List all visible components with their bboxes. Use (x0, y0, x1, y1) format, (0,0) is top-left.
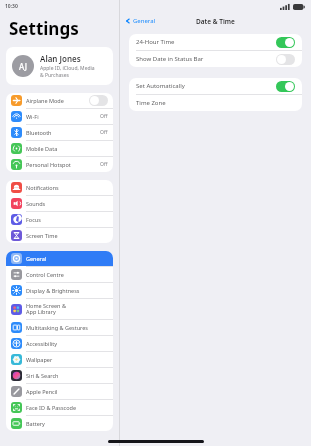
staticText: Bluetooth (26, 129, 100, 136)
staticText: Wallpaper (26, 356, 108, 363)
staticText: Apple ID, iCloud, Media & Purchases (40, 65, 95, 79)
staticText: AJ (19, 61, 27, 72)
staticText: 10:30 (5, 3, 18, 10)
button[interactable]: Show Date in Status Bar (129, 51, 302, 67)
staticText: Mobile Data (26, 145, 108, 152)
staticText: 24-Hour Time (136, 38, 276, 46)
staticText: Time Zone (136, 99, 295, 107)
staticText: Show Date in Status Bar (136, 55, 276, 63)
button[interactable]: Sounds (6, 196, 113, 211)
staticText: Off (100, 129, 108, 136)
staticText: Display & Brightness (26, 287, 108, 294)
staticText: Face ID & Passcode (26, 404, 108, 411)
staticText: Screen Time (26, 232, 108, 239)
button[interactable]: Personal Hotspot (6, 157, 113, 172)
staticText: Notifications (26, 184, 108, 191)
staticText: Wi-Fi (26, 113, 100, 120)
button[interactable]: Toggle on (276, 37, 295, 48)
button[interactable]: AJ (6, 47, 113, 85)
staticText: Accessibility (26, 340, 108, 347)
button[interactable]: Airplane Mode (6, 93, 113, 108)
button[interactable]: Toggle on (276, 81, 295, 92)
staticText: Siri & Search (26, 372, 108, 379)
button[interactable]: General (125, 17, 156, 25)
button[interactable]: General (6, 251, 113, 266)
staticText: Off (100, 113, 108, 120)
staticText: Sounds (26, 200, 108, 207)
staticText: General (26, 255, 108, 262)
staticText: Battery (26, 420, 108, 427)
button[interactable]: Home Screen & App Library (6, 299, 113, 319)
button[interactable]: Toggle off (276, 54, 295, 65)
staticText: Set Automatically (136, 82, 276, 90)
button[interactable]: Accessibility (6, 336, 113, 351)
staticText: Airplane Mode (26, 97, 89, 104)
button[interactable]: Multitasking & Gestures (6, 320, 113, 335)
staticText: Alan Jones (40, 53, 81, 64)
staticText: Off (100, 161, 108, 168)
staticText: Date & Time (196, 17, 235, 26)
button[interactable]: Wallpaper (6, 352, 113, 367)
button[interactable]: Screen Time (6, 228, 113, 243)
button[interactable]: Siri & Search (6, 368, 113, 383)
button[interactable]: 24-Hour Time (129, 34, 302, 50)
button[interactable]: Focus (6, 212, 113, 227)
button[interactable]: Wi-Fi (6, 109, 113, 124)
button[interactable]: Battery (6, 416, 113, 431)
staticText: Home Screen & App Library (26, 302, 108, 316)
staticText: Focus (26, 216, 108, 223)
staticText: Settings (9, 17, 79, 40)
staticText: General (133, 17, 156, 25)
button[interactable]: Apple Pencil (6, 384, 113, 399)
staticText: Apple Pencil (26, 388, 108, 395)
button[interactable]: Control Centre (6, 267, 113, 282)
button[interactable]: Time Zone (129, 95, 302, 111)
staticText: Multitasking & Gestures (26, 324, 108, 331)
button[interactable]: Set Automatically (129, 78, 302, 94)
staticText: Personal Hotspot (26, 161, 100, 168)
button[interactable]: Notifications (6, 180, 113, 195)
button[interactable]: Display & Brightness (6, 283, 113, 298)
button[interactable]: Bluetooth (6, 125, 113, 140)
button[interactable]: Face ID & Passcode (6, 400, 113, 415)
button[interactable]: Mobile Data (6, 141, 113, 156)
staticText: Control Centre (26, 271, 108, 278)
button[interactable]: Toggle off (89, 95, 108, 106)
